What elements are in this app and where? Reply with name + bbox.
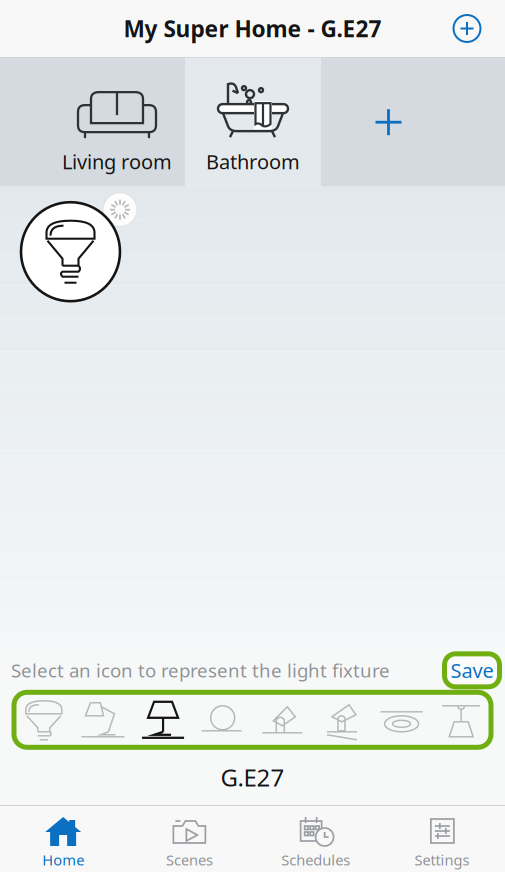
staticText: Living room [62, 148, 172, 175]
button[interactable]: Add [444, 5, 490, 51]
button[interactable]: Schedules [252, 806, 379, 872]
button[interactable]: Settings [379, 806, 505, 872]
button[interactable]: Add room [321, 58, 456, 187]
staticText: My Super Home - G.E27 [123, 13, 381, 43]
button[interactable]: Lamp style 2 [74, 696, 133, 743]
button[interactable]: Lamp style 8 [431, 696, 491, 743]
button[interactable]: Lamp style 4 [193, 696, 252, 743]
staticText: Save [450, 657, 493, 684]
button[interactable]: Home [0, 806, 126, 872]
button[interactable]: Lamp style 7 [372, 696, 431, 743]
button[interactable]: Lamp style 3 [133, 696, 193, 743]
staticText: Schedules [281, 850, 350, 869]
button[interactable]: Save [441, 650, 503, 690]
staticText: Home [42, 850, 84, 869]
button[interactable]: Light G.E27 [20, 192, 138, 310]
staticText: Select an icon to represent the light fi… [11, 658, 390, 683]
button[interactable]: Lamp style 6 [312, 696, 372, 743]
staticText: Settings [414, 850, 469, 869]
button[interactable]: Living room [49, 58, 185, 187]
button[interactable]: Lamp style 1 [14, 696, 74, 743]
button[interactable]: Bathroom [185, 58, 321, 187]
button[interactable]: Scenes [126, 806, 252, 872]
staticText: Scenes [166, 850, 213, 869]
button[interactable]: Lamp style 5 [252, 696, 312, 743]
staticText: G.E27 [220, 761, 284, 793]
staticText: Bathroom [206, 148, 300, 175]
